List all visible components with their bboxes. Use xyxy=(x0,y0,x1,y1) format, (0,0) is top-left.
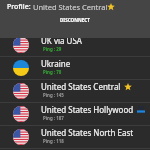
staticText: United States Central xyxy=(41,81,121,92)
staticText: Ukraine xyxy=(41,58,71,69)
button[interactable]: United States North East xyxy=(0,126,150,149)
staticText: Profile: xyxy=(7,2,31,12)
staticText: United States North East xyxy=(41,127,134,138)
button[interactable]: United States Hollywood xyxy=(0,103,150,126)
button[interactable]: DISCONNECT xyxy=(54,15,96,25)
button[interactable]: Ukraine xyxy=(0,57,150,80)
staticText: Ping : 70 xyxy=(43,69,62,75)
staticText: United States Central xyxy=(31,2,108,12)
staticText: UK via USA xyxy=(41,35,82,46)
staticText: Ping : 187 xyxy=(43,115,64,121)
staticText: Ping : 145 xyxy=(43,92,64,98)
staticText: Ping : 118 xyxy=(43,138,64,144)
button[interactable]: UK via USA xyxy=(0,34,150,57)
button[interactable]: United States Central xyxy=(0,80,150,103)
staticText: DISCONNECT xyxy=(60,17,90,23)
staticText: Ping : 29 xyxy=(43,46,62,52)
staticText: United States Hollywood xyxy=(41,104,134,115)
